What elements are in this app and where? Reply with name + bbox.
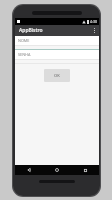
button[interactable]: More options [89,25,99,36]
staticText: 4:30 [90,19,97,24]
button[interactable]: OK [44,69,70,82]
staticText: OK [54,73,60,78]
button[interactable]: SENHA [15,50,99,59]
button[interactable]: Home [43,165,71,175]
staticText: NOME [18,38,30,43]
button[interactable]: NOME [15,36,99,45]
staticText: SENHA [18,52,31,57]
staticText: AppBistro [19,27,43,34]
button[interactable]: Recent apps [71,165,99,175]
button[interactable]: Back [15,165,43,175]
